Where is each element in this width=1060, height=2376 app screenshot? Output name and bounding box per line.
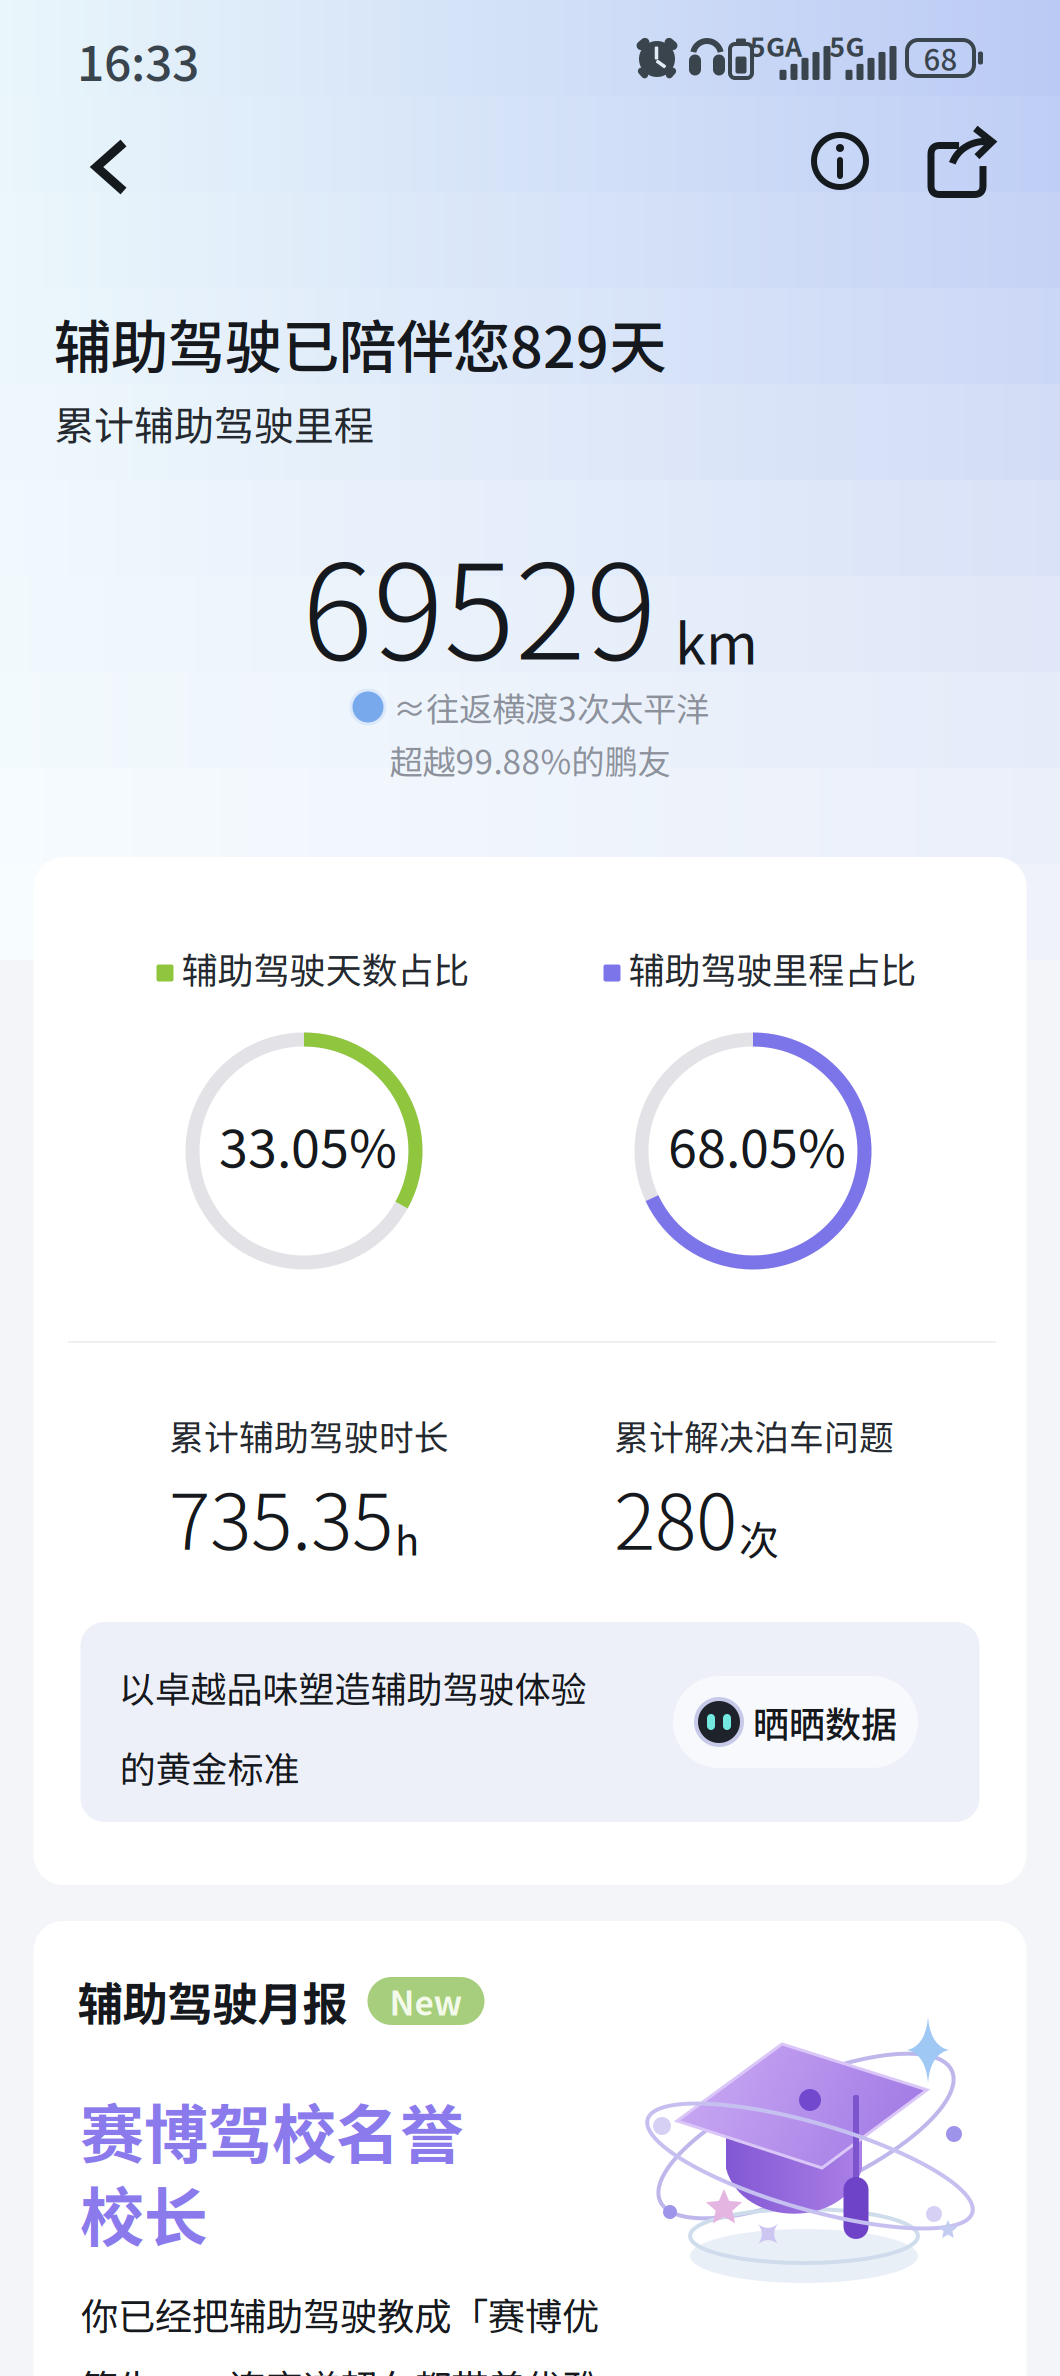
staticText: 的黄金标准 <box>119 1741 299 1793</box>
staticText: 5GA <box>750 26 802 64</box>
staticText: 你已经把辅助驾驶教成「赛博优 <box>81 2287 599 2341</box>
staticText: 超越99.88%的鹏友 <box>389 736 670 784</box>
staticText: 68.05% <box>668 1107 846 1183</box>
staticText: 辅助驾驶里程占比 <box>628 942 916 994</box>
staticText: 16:33 <box>77 25 199 95</box>
staticText: 以卓越品味塑造辅助驾驶体验 <box>118 1661 586 1713</box>
staticText: 5G <box>829 26 864 64</box>
staticText: 赛博驾校名誉 <box>80 2084 464 2176</box>
staticText: 735.35 <box>169 1460 393 1572</box>
button[interactable]: 晒晒数据 <box>673 1676 918 1768</box>
button[interactable]: Info <box>796 117 884 205</box>
staticText: New <box>389 1977 462 2025</box>
button[interactable]: Share <box>914 117 1002 205</box>
staticText: 辅助驾驶月报 <box>77 1968 347 2034</box>
staticText: 33.05% <box>219 1107 397 1183</box>
staticText: 校长 <box>80 2167 208 2259</box>
staticText: 等生」，连变道超车都带着优雅 <box>81 2359 599 2376</box>
staticText: 辅助驾驶天数占比 <box>181 942 469 994</box>
button[interactable]: Back <box>60 117 160 217</box>
staticText: 68 <box>923 37 957 79</box>
staticText: 280 <box>614 1460 737 1572</box>
staticText: 69529 <box>302 506 657 697</box>
staticText: ≈往返横渡3次太平洋 <box>393 683 709 731</box>
staticText: 次 <box>739 1509 779 1567</box>
staticText: 累计辅助驾驶时长 <box>169 1410 449 1460</box>
staticText: 累计辅助驾驶里程 <box>54 394 374 452</box>
staticText: h <box>395 1509 419 1567</box>
staticText: 辅助驾驶已陪伴您829天 <box>54 301 666 384</box>
staticText: km <box>675 599 758 681</box>
staticText: 晒晒数据 <box>753 1696 897 1748</box>
staticText: 累计解决泊车问题 <box>614 1410 894 1460</box>
